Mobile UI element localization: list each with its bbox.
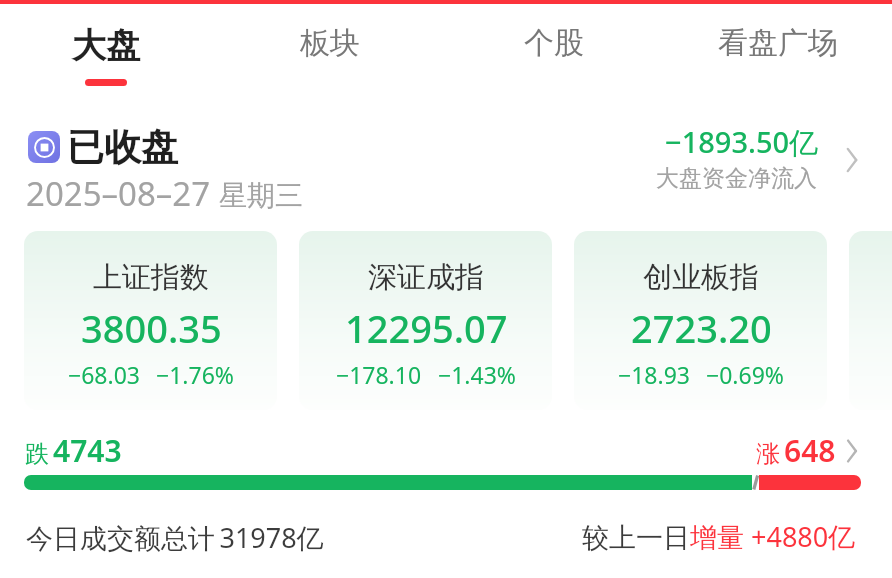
staticText: 星期三 [219,178,303,213]
button[interactable]: 科创50 [849,231,892,410]
staticText: 上证指数 [93,259,209,296]
staticText: −1.43% [438,359,516,390]
staticText: 12295.07 [345,302,508,354]
staticText: −0.69% [706,359,784,390]
staticText: −178.10 [336,359,422,390]
staticText: 大盘 [72,24,140,67]
staticText: 个股 [524,24,584,62]
staticText: 2723.20 [631,302,772,354]
staticText: −18.93 [618,359,690,390]
staticText: 创业板指 [643,259,759,296]
button[interactable]: 看盘广场 [678,24,878,88]
button[interactable]: −1893.50亿 [636,114,876,200]
staticText: −68.03 [68,359,140,390]
staticText: 2025–08–27 [26,171,211,216]
staticText: 看盘广场 [718,24,838,62]
staticText: 涨 648 [756,430,836,471]
staticText: 今日成交额总计 31978亿 [26,519,324,556]
staticText: 大盘资金净流入 [656,164,817,193]
staticText: −1.76% [156,359,234,390]
button[interactable]: 个股 [454,24,654,88]
staticText: 跌 4743 [25,430,122,471]
staticText: 已收盘 [67,124,178,171]
button[interactable]: 大盘 [6,24,206,88]
staticText: 板块 [300,24,360,62]
button[interactable]: 跌 4743 [16,424,876,500]
button[interactable]: 创业板指 [574,231,827,410]
other: 查看大盘资金净流入 [833,141,871,179]
staticText: 较上一日增量 +4880亿 [582,518,856,555]
button[interactable]: 已收盘 [16,118,336,214]
staticText: 深证成指 [368,259,484,296]
button[interactable]: 上证指数 [24,231,277,410]
other: 查看涨跌家数 [834,433,870,469]
staticText: −1893.50亿 [665,122,819,162]
button[interactable]: 深证成指 [299,231,552,410]
button[interactable]: 板块 [230,24,430,88]
staticText: 3800.35 [81,302,222,354]
